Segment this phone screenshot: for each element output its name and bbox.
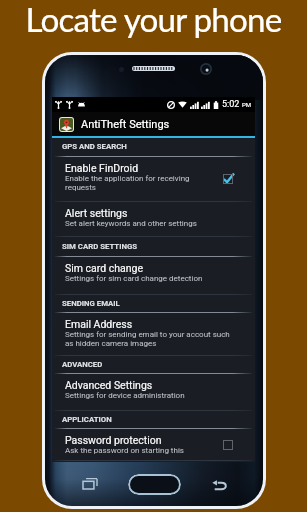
staticText: AntiTheft Settings xyxy=(81,118,170,131)
staticText: Email Address xyxy=(65,318,133,330)
staticText: PM xyxy=(242,101,252,108)
button[interactable]: Enable FinDroid xyxy=(52,157,255,202)
button[interactable]: Password protection xyxy=(52,429,255,461)
staticText: Settings for device administration xyxy=(65,391,185,400)
button[interactable]: Advanced Settings xyxy=(52,374,255,411)
button[interactable]: Recent apps xyxy=(83,478,97,489)
staticText: SENDING EMAIL xyxy=(62,299,120,308)
staticText: ADVANCED xyxy=(62,360,103,369)
button[interactable]: Alert settings xyxy=(52,202,255,237)
staticText: Advanced Settings xyxy=(65,379,153,391)
staticText: Ask the password on starting this xyxy=(65,446,184,455)
staticText: Enable the application for receiving req… xyxy=(65,174,219,192)
staticText: SIM CARD SETTINGS xyxy=(62,242,138,251)
staticText: Password protection xyxy=(65,434,162,446)
staticText: 5:02 xyxy=(222,99,240,110)
button[interactable]: Sim card change xyxy=(52,257,255,295)
button[interactable]: Home xyxy=(128,474,181,495)
staticText: Settings for sending email to your accou… xyxy=(65,330,239,348)
staticText: Set alert keywords and other settings xyxy=(65,219,197,228)
button[interactable]: Back xyxy=(212,480,227,490)
staticText: Settings for sim card change detection xyxy=(65,274,203,283)
staticText: Locate your phone xyxy=(0,0,307,39)
staticText: APPLICATION xyxy=(62,415,112,424)
staticText: GPS AND SEARCH xyxy=(62,142,127,151)
staticText: Enable FinDroid xyxy=(65,162,139,174)
staticText: Sim card change xyxy=(65,262,144,274)
staticText: Alert settings xyxy=(65,207,128,219)
button[interactable]: Email Address xyxy=(52,313,255,356)
